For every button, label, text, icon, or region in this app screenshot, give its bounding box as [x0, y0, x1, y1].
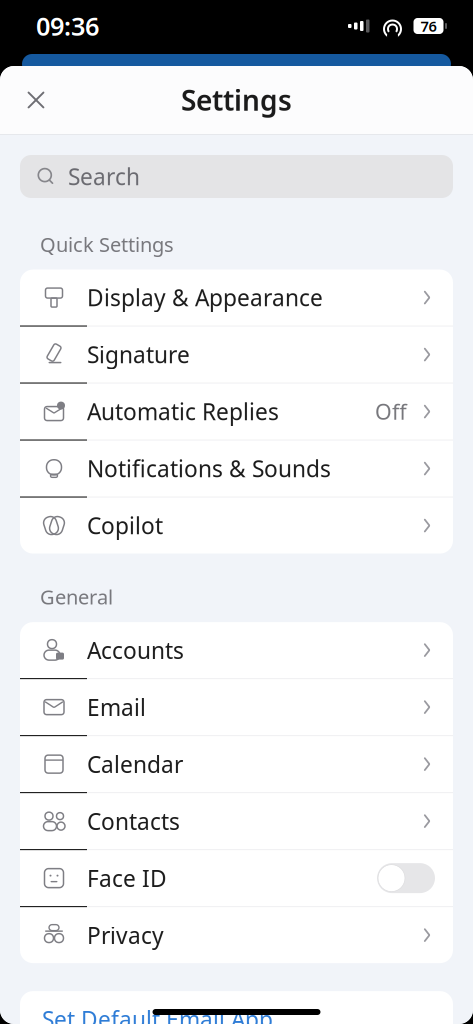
button[interactable]: Display & Appearance [20, 270, 453, 326]
staticText: Off [375, 397, 407, 426]
staticText: Accounts [87, 635, 184, 665]
staticText: Face ID [87, 863, 167, 893]
button[interactable]: Close [14, 78, 58, 122]
staticText: Privacy [87, 920, 164, 950]
staticText: Quick Settings [40, 231, 174, 258]
staticText: Contacts [87, 806, 180, 836]
staticText: Notifications & Sounds [87, 453, 331, 484]
button[interactable]: Privacy [20, 907, 453, 963]
button[interactable]: Signature [20, 327, 453, 383]
button[interactable]: Copilot [20, 498, 453, 554]
staticText: 76 [420, 16, 436, 36]
staticText: Automatic Replies [87, 396, 279, 427]
button[interactable]: Automatic Replies [20, 384, 453, 440]
staticText: Email [87, 692, 146, 722]
staticText: Settings [181, 81, 292, 119]
button[interactable]: Accounts [20, 622, 453, 678]
button[interactable]: Contacts [20, 793, 453, 849]
staticText: Display & Appearance [87, 282, 323, 313]
staticText: Calendar [87, 749, 183, 779]
staticText: Search [68, 161, 140, 191]
staticText: Signature [87, 339, 190, 370]
staticText: General [40, 584, 113, 610]
staticText: 09:36 [36, 9, 99, 43]
staticText: Copilot [87, 510, 163, 541]
button[interactable]: Email [20, 679, 453, 735]
button[interactable]: Face ID [20, 850, 453, 906]
button[interactable]: Calendar [20, 736, 453, 792]
button[interactable]: Notifications & Sounds [20, 441, 453, 497]
staticText: Set Default Email App [42, 1004, 273, 1024]
button[interactable]: Search [20, 155, 453, 198]
button[interactable]: Set Default Email App [20, 991, 453, 1024]
